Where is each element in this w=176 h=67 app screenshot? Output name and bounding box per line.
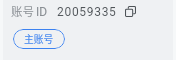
staticText: 20059335: [57, 5, 117, 19]
button[interactable]: Copy account ID: [124, 5, 137, 18]
staticText: 账号: [11, 3, 34, 20]
staticText: ID: [36, 5, 48, 19]
staticText: 主账号: [24, 32, 54, 46]
button[interactable]: 主账号: [13, 29, 65, 49]
